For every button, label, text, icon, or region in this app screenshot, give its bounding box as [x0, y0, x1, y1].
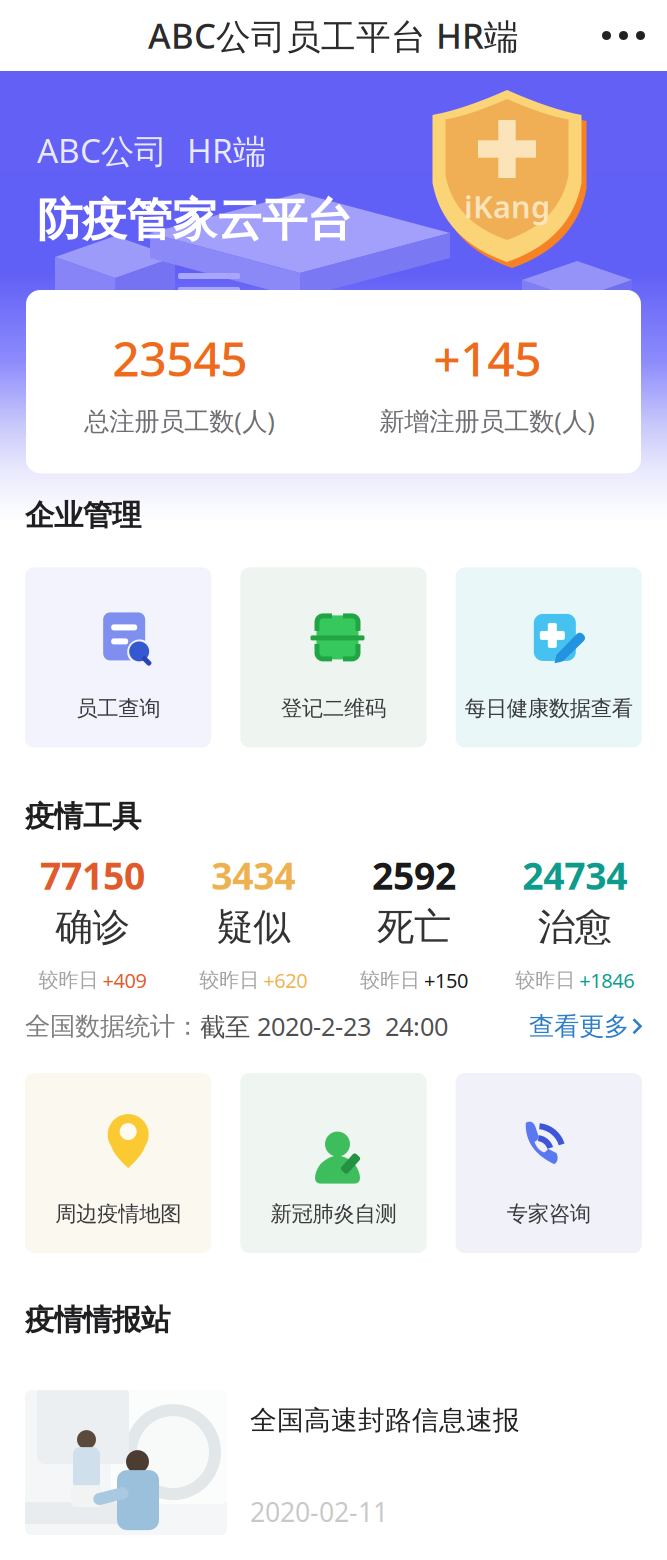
button[interactable]: 登记二维码: [240, 567, 427, 747]
staticText: 每日健康数据查看: [465, 695, 633, 721]
staticText: ABC公司 HR端: [37, 128, 266, 172]
button[interactable]: 新冠肺炎自测: [240, 1073, 427, 1253]
staticText: 全国数据统计：: [25, 1011, 200, 1042]
staticText: 24734: [522, 850, 627, 900]
staticText: 较昨日: [199, 968, 259, 992]
staticText: 较昨日: [360, 968, 420, 992]
staticText: 死亡: [377, 904, 451, 950]
staticText: 总注册员工数(人): [84, 404, 275, 437]
staticText: 疫情工具: [25, 798, 141, 834]
button[interactable]: 每日健康数据查看: [456, 567, 642, 747]
staticText: 登记二维码: [281, 695, 386, 721]
staticText: 较昨日: [38, 968, 98, 992]
staticText: 确诊: [55, 904, 129, 950]
staticText: 全国高速封路信息速报: [250, 1404, 520, 1437]
staticText: +150: [424, 967, 468, 993]
staticText: 新增注册员工数(人): [379, 404, 595, 437]
staticText: 较昨日: [515, 968, 575, 992]
staticText: 新冠肺炎自测: [270, 1201, 396, 1227]
staticText: 防疫管家云平台: [37, 192, 352, 248]
staticText: 2592: [372, 850, 456, 900]
staticText: iKang: [464, 186, 550, 227]
staticText: 员工查询: [76, 695, 160, 721]
staticText: +409: [102, 967, 146, 993]
staticText: 3434: [211, 850, 295, 900]
staticText: 企业管理: [25, 497, 141, 533]
staticText: +620: [263, 967, 307, 993]
staticText: ABC公司员工平台 HR端: [148, 12, 519, 59]
button[interactable]: 专家咨询: [456, 1073, 642, 1253]
staticText: 23545: [112, 326, 247, 390]
staticText: 77150: [40, 850, 145, 900]
staticText: 2020-02-11: [250, 1494, 388, 1529]
button[interactable]: More options: [586, 11, 661, 60]
staticText: 周边疫情地图: [55, 1201, 181, 1227]
button[interactable]: 员工查询: [25, 567, 211, 747]
staticText: 查看更多: [529, 1011, 629, 1042]
button[interactable]: 全国高速封路信息速报: [0, 1390, 667, 1535]
staticText: 治愈: [538, 904, 612, 950]
staticText: 专家咨询: [507, 1201, 591, 1227]
staticText: +1846: [579, 967, 634, 993]
staticText: 截至 2020-2-23 24:00: [200, 1009, 448, 1043]
button[interactable]: 查看更多: [529, 1011, 642, 1042]
staticText: 疑似: [216, 904, 290, 950]
button[interactable]: 周边疫情地图: [25, 1073, 211, 1253]
staticText: 疫情情报站: [25, 1302, 170, 1338]
staticText: +145: [433, 326, 541, 390]
